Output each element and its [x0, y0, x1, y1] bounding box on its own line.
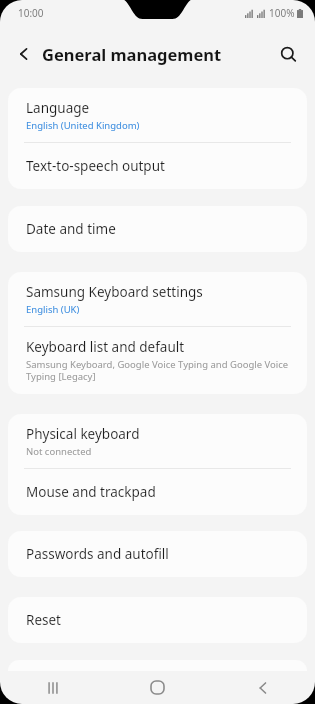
staticText: Language	[26, 99, 90, 117]
button[interactable]: Search	[271, 37, 305, 71]
staticText: Keyboard list and default	[26, 338, 185, 356]
button[interactable]: Samsung Keyboard settings	[8, 272, 307, 327]
button[interactable]: Mouse and trackpad	[8, 469, 307, 515]
button[interactable]: Language	[8, 88, 307, 143]
button[interactable]: Physical keyboard	[8, 414, 307, 469]
staticText: General management	[42, 43, 222, 65]
staticText: Date and time	[26, 220, 116, 238]
staticText: 100%	[269, 6, 295, 20]
button[interactable]: Back	[210, 671, 315, 704]
button[interactable]: Text-to-speech output	[8, 143, 307, 189]
button[interactable]: Back	[8, 38, 40, 70]
staticText: Physical keyboard	[26, 425, 140, 443]
staticText: Samsung Keyboard settings	[26, 283, 203, 301]
button[interactable]: Reset	[8, 597, 307, 643]
staticText: Reset	[26, 611, 61, 629]
button[interactable]: Keyboard list and default	[8, 327, 307, 394]
staticText: 10:00	[18, 6, 44, 20]
button[interactable]: Passwords and autofill	[8, 531, 307, 577]
staticText: English (UK)	[26, 303, 80, 316]
staticText: Not connected	[26, 445, 92, 458]
staticText: Mouse and trackpad	[26, 483, 156, 501]
button[interactable]: Recent apps	[0, 671, 105, 704]
staticText: Passwords and autofill	[26, 545, 169, 563]
staticText: Text-to-speech output	[26, 157, 165, 175]
staticText: English (United Kingdom)	[26, 119, 140, 132]
staticText: Samsung Keyboard, Google Voice Typing an…	[26, 358, 289, 383]
button[interactable]: Home	[105, 671, 210, 704]
button[interactable]: Date and time	[8, 206, 307, 252]
